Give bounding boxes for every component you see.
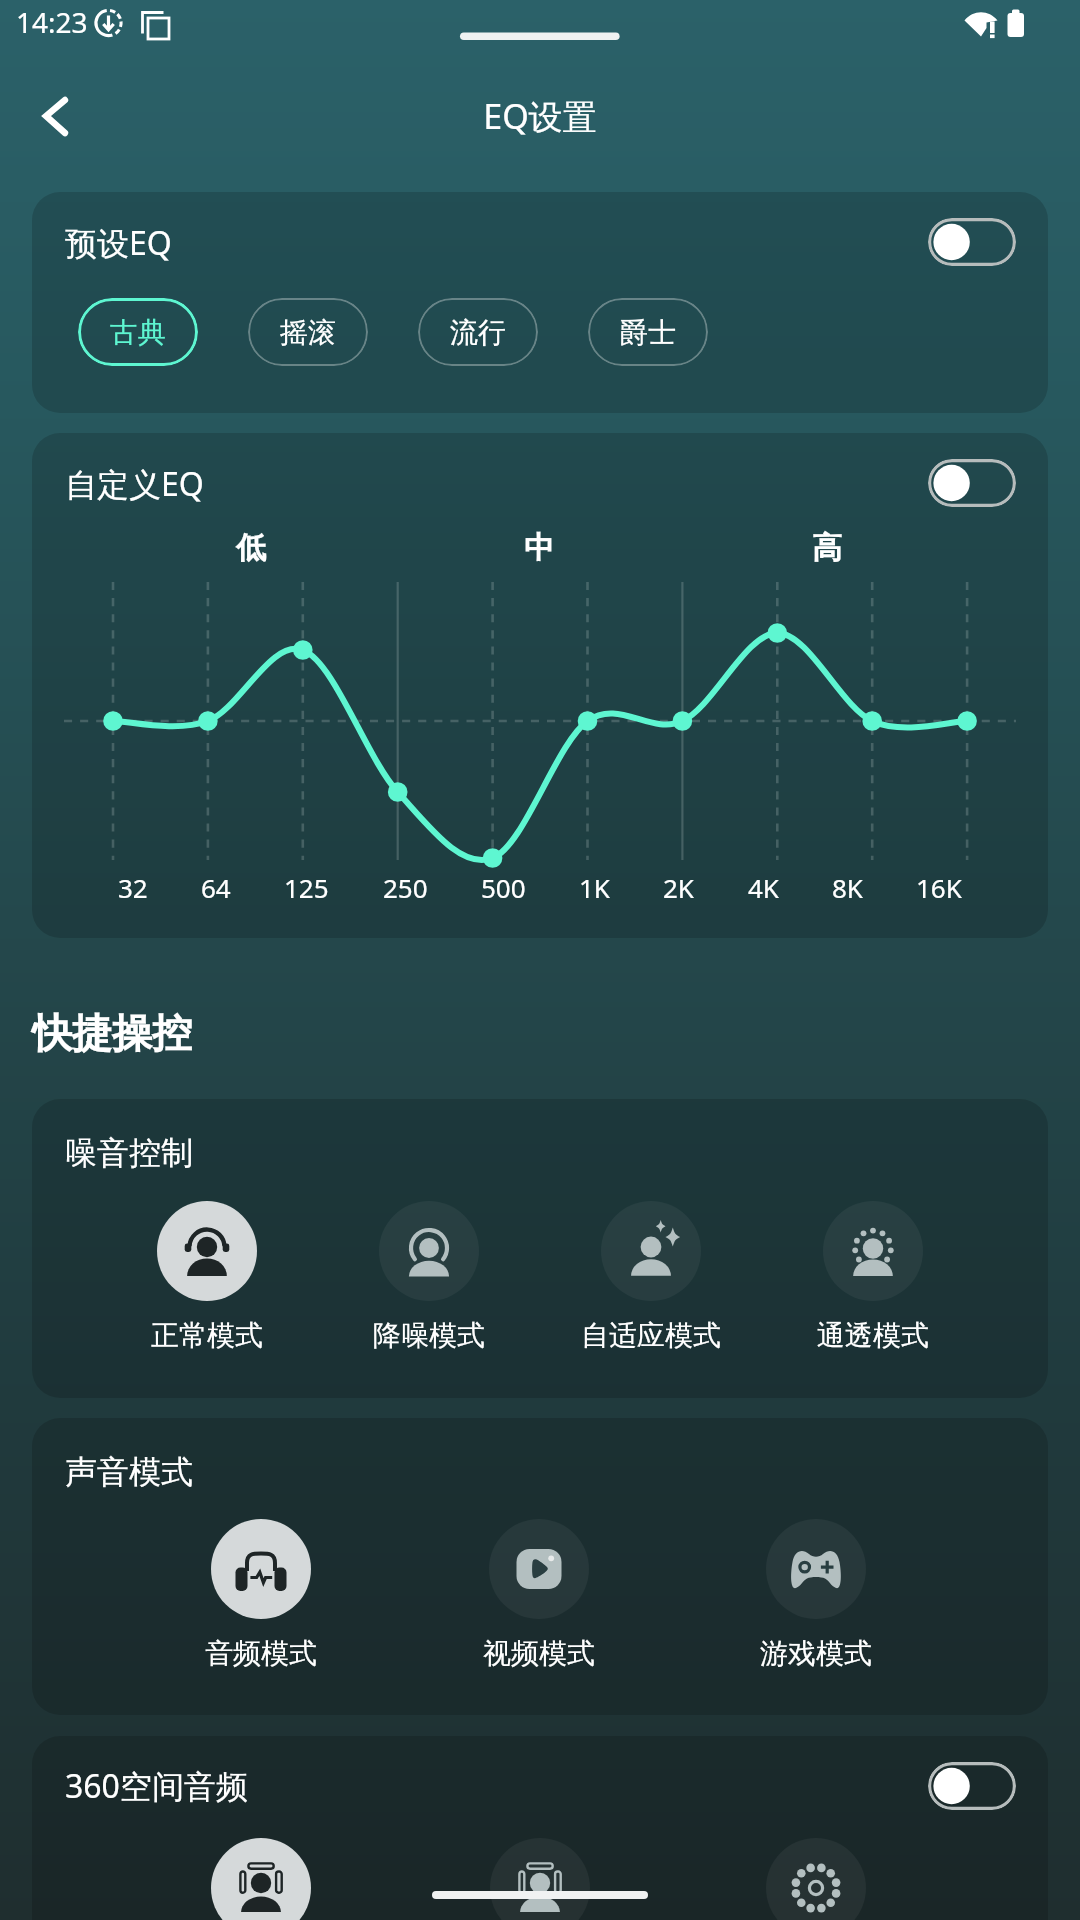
staticText: 爵士 bbox=[620, 315, 676, 350]
button[interactable] bbox=[161, 1838, 361, 1920]
staticText: 流行 bbox=[450, 315, 506, 350]
staticText: 360空间音频 bbox=[65, 1764, 248, 1808]
staticText: 音频模式 bbox=[161, 1636, 361, 1671]
button[interactable]: 流行 bbox=[418, 298, 538, 366]
staticText: 自适应模式 bbox=[551, 1318, 751, 1353]
staticText: 中 bbox=[524, 529, 554, 567]
staticText: 噪音控制 bbox=[65, 1133, 193, 1173]
staticText: 声音模式 bbox=[65, 1452, 193, 1492]
button[interactable]: 正常模式 bbox=[107, 1201, 307, 1361]
staticText: 500 bbox=[481, 870, 526, 905]
staticText: 125 bbox=[284, 870, 329, 905]
staticText: 通透模式 bbox=[773, 1318, 973, 1353]
button[interactable] bbox=[716, 1838, 916, 1920]
staticText: 视频模式 bbox=[439, 1636, 639, 1671]
staticText: 古典 bbox=[110, 315, 166, 350]
staticText: 8K bbox=[832, 870, 863, 905]
staticText: 64 bbox=[201, 870, 231, 905]
button[interactable]: Toggle bbox=[928, 218, 1016, 266]
button[interactable]: Toggle bbox=[928, 1762, 1016, 1810]
button[interactable]: 古典 bbox=[78, 298, 198, 366]
staticText: 2K bbox=[663, 870, 694, 905]
button[interactable]: 游戏模式 bbox=[716, 1519, 916, 1679]
staticText: 降噪模式 bbox=[329, 1318, 529, 1353]
button[interactable]: 音频模式 bbox=[161, 1519, 361, 1679]
button[interactable]: 视频模式 bbox=[439, 1519, 639, 1679]
staticText: 预设EQ bbox=[65, 221, 172, 265]
staticText: 游戏模式 bbox=[716, 1636, 916, 1671]
button[interactable]: Toggle bbox=[928, 459, 1016, 507]
staticText: 快捷操控 bbox=[32, 1008, 192, 1058]
staticText: 摇滚 bbox=[280, 315, 336, 350]
button[interactable] bbox=[440, 1838, 640, 1920]
staticText: 14:23 bbox=[16, 3, 88, 41]
button[interactable]: 通透模式 bbox=[773, 1201, 973, 1361]
staticText: 32 bbox=[118, 870, 148, 905]
staticText: 自定义EQ bbox=[65, 462, 204, 506]
staticText: 16K bbox=[916, 870, 962, 905]
button[interactable]: 爵士 bbox=[588, 298, 708, 366]
button[interactable]: Back bbox=[14, 82, 82, 150]
button[interactable]: 摇滚 bbox=[248, 298, 368, 366]
staticText: 正常模式 bbox=[107, 1318, 307, 1353]
staticText: 4K bbox=[748, 870, 779, 905]
staticText: EQ设置 bbox=[0, 93, 1080, 139]
staticText: 低 bbox=[236, 529, 266, 567]
staticText: 1K bbox=[579, 870, 610, 905]
staticText: 高 bbox=[812, 529, 842, 567]
button[interactable]: 降噪模式 bbox=[329, 1201, 529, 1361]
button[interactable]: 自适应模式 bbox=[551, 1201, 751, 1361]
staticText: 250 bbox=[383, 870, 428, 905]
